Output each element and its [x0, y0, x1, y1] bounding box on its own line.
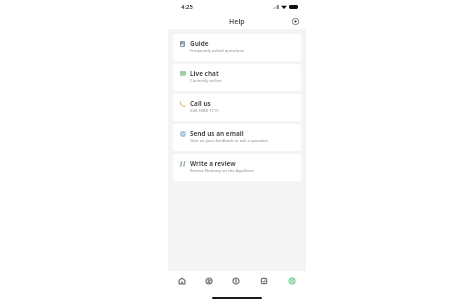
button[interactable]: Call us: [173, 94, 301, 121]
button[interactable]: Write a review: [173, 154, 301, 181]
button[interactable]: Help: [278, 271, 306, 290]
staticText: Frequently asked questions: [190, 48, 244, 54]
staticText: Review Nutmeg on the AppStore: [190, 168, 254, 174]
staticText: 020 3588 1115: [190, 108, 219, 114]
button[interactable]: Performance: [222, 271, 250, 290]
button[interactable]: Investments: [195, 271, 222, 290]
button[interactable]: Settings: [290, 16, 301, 27]
button[interactable]: Documents: [250, 271, 278, 290]
staticText: Currently online: [190, 78, 222, 84]
staticText: 4:25: [181, 3, 193, 11]
button[interactable]: Guide: [173, 34, 301, 61]
staticText: Write a review: [190, 159, 236, 168]
staticText: Help: [229, 17, 245, 27]
button[interactable]: Live chat: [173, 64, 301, 91]
staticText: Send us an email: [190, 129, 244, 138]
button[interactable]: Send us an email: [173, 124, 301, 151]
staticText: Give us your feedback or ask a question: [190, 138, 269, 144]
staticText: Live chat: [190, 69, 219, 78]
staticText: Guide: [190, 39, 209, 48]
staticText: Call us: [190, 99, 211, 108]
button[interactable]: Home: [168, 271, 195, 290]
